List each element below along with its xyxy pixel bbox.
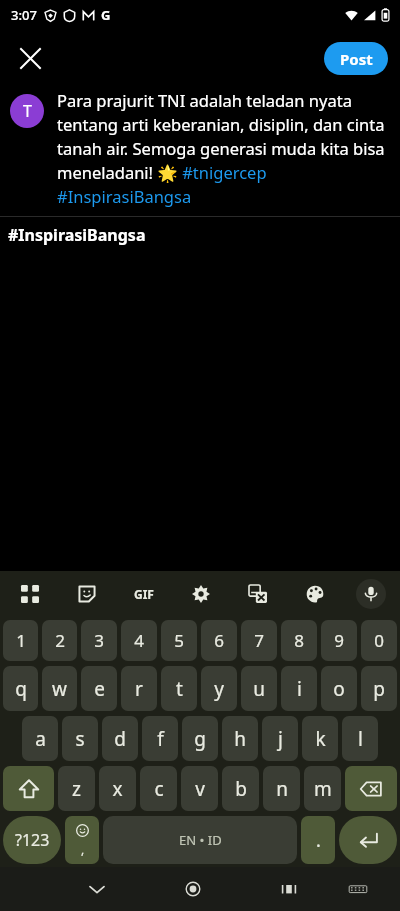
button[interactable]: q <box>3 666 38 711</box>
staticText: j <box>278 726 283 752</box>
button[interactable]: Enter <box>339 816 397 864</box>
staticText: k <box>315 726 326 752</box>
button[interactable]: w <box>42 666 77 711</box>
button[interactable]: o <box>321 666 357 711</box>
staticText: b <box>235 776 247 802</box>
button[interactable]: m <box>304 766 341 811</box>
button[interactable]: Hide keyboard <box>79 871 115 907</box>
button[interactable]: z <box>58 766 95 811</box>
staticText: e <box>94 676 105 702</box>
staticText: 8 <box>294 629 304 652</box>
staticText: g <box>194 726 206 752</box>
staticText: c <box>154 776 164 802</box>
button[interactable]: 4 <box>121 620 157 661</box>
button[interactable]: Shift <box>3 766 54 811</box>
staticText: ?123 <box>15 829 50 851</box>
staticText: t <box>176 676 183 702</box>
button[interactable]: v <box>181 766 218 811</box>
staticText: 2 <box>55 629 65 652</box>
staticText: x <box>112 776 123 802</box>
button[interactable]: EN • ID <box>103 816 297 864</box>
staticText: 0 <box>374 629 384 652</box>
button[interactable]: Sticker <box>71 578 103 610</box>
button[interactable]: 3 <box>81 620 117 661</box>
button[interactable]: GIF <box>128 578 160 610</box>
staticText: u <box>253 676 265 702</box>
button[interactable]: 1 <box>3 620 38 661</box>
button[interactable]: Settings <box>185 578 217 610</box>
button[interactable]: k <box>302 716 338 761</box>
staticText: 4 <box>134 629 144 652</box>
button[interactable]: b <box>222 766 259 811</box>
staticText: h <box>234 726 246 752</box>
button[interactable]: Para prajurit TNI adalah teladan nyata t… <box>57 89 394 208</box>
staticText: s <box>75 726 85 752</box>
staticText: Post <box>340 49 373 69</box>
staticText: l <box>358 726 363 752</box>
staticText: f <box>157 726 164 752</box>
button[interactable]: 7 <box>241 620 277 661</box>
button[interactable]: 0 <box>361 620 397 661</box>
button[interactable]: l <box>342 716 378 761</box>
button[interactable]: 2 <box>42 620 77 661</box>
button[interactable]: 8 <box>281 620 317 661</box>
staticText: w <box>52 676 67 702</box>
button[interactable]: a <box>22 716 58 761</box>
button[interactable]: e <box>81 666 117 711</box>
staticText: p <box>373 676 385 702</box>
button[interactable]: Voice input <box>356 579 386 609</box>
button[interactable]: d <box>102 716 138 761</box>
staticText: i <box>297 676 302 702</box>
staticText: T <box>23 100 32 122</box>
staticText: o <box>333 676 345 702</box>
button[interactable]: i <box>281 666 317 711</box>
button[interactable]: r <box>121 666 157 711</box>
button[interactable]: Close <box>8 36 52 80</box>
button[interactable]: p <box>361 666 397 711</box>
button[interactable]: Backspace <box>345 766 397 811</box>
button[interactable]: Home <box>175 871 211 907</box>
staticText: 1 <box>16 629 26 652</box>
button[interactable]: c <box>140 766 177 811</box>
button[interactable]: 9 <box>321 620 357 661</box>
button[interactable]: f <box>142 716 178 761</box>
staticText: d <box>114 726 126 752</box>
staticText: m <box>314 776 332 802</box>
button[interactable]: ?123 <box>3 816 61 864</box>
staticText: n <box>276 776 288 802</box>
staticText: 9 <box>334 629 344 652</box>
button[interactable]: y <box>201 666 237 711</box>
staticText: 3:07 <box>11 6 37 24</box>
button[interactable]: #InspirasiBangsa <box>8 224 146 246</box>
button[interactable]: t <box>161 666 197 711</box>
button[interactable]: Recents <box>271 871 307 907</box>
button[interactable]: Emoji and comma <box>65 816 99 864</box>
button[interactable]: 5 <box>161 620 197 661</box>
staticText: EN • ID <box>179 831 222 849</box>
button[interactable]: . <box>301 816 335 864</box>
staticText: , <box>81 841 85 857</box>
button[interactable]: j <box>262 716 298 761</box>
staticText: 5 <box>174 629 184 652</box>
button[interactable]: 6 <box>201 620 237 661</box>
button[interactable]: Post <box>324 42 388 75</box>
staticText: . <box>316 828 321 853</box>
button[interactable]: u <box>241 666 277 711</box>
staticText: 6 <box>214 629 224 652</box>
button[interactable]: Switch keyboard <box>340 871 376 907</box>
button[interactable]: n <box>263 766 300 811</box>
staticText: y <box>214 676 224 702</box>
button[interactable]: g <box>182 716 218 761</box>
button[interactable]: x <box>99 766 136 811</box>
staticText: a <box>35 726 46 752</box>
staticText: z <box>72 776 81 802</box>
button[interactable]: Themes <box>299 578 331 610</box>
staticText: 3 <box>94 629 104 652</box>
staticText: GIF <box>134 586 154 602</box>
button[interactable]: Profile <box>10 94 44 128</box>
button[interactable]: Translate <box>242 578 274 610</box>
button[interactable]: s <box>62 716 98 761</box>
staticText: r <box>135 676 143 702</box>
button[interactable]: h <box>222 716 258 761</box>
button[interactable]: Apps <box>14 578 46 610</box>
